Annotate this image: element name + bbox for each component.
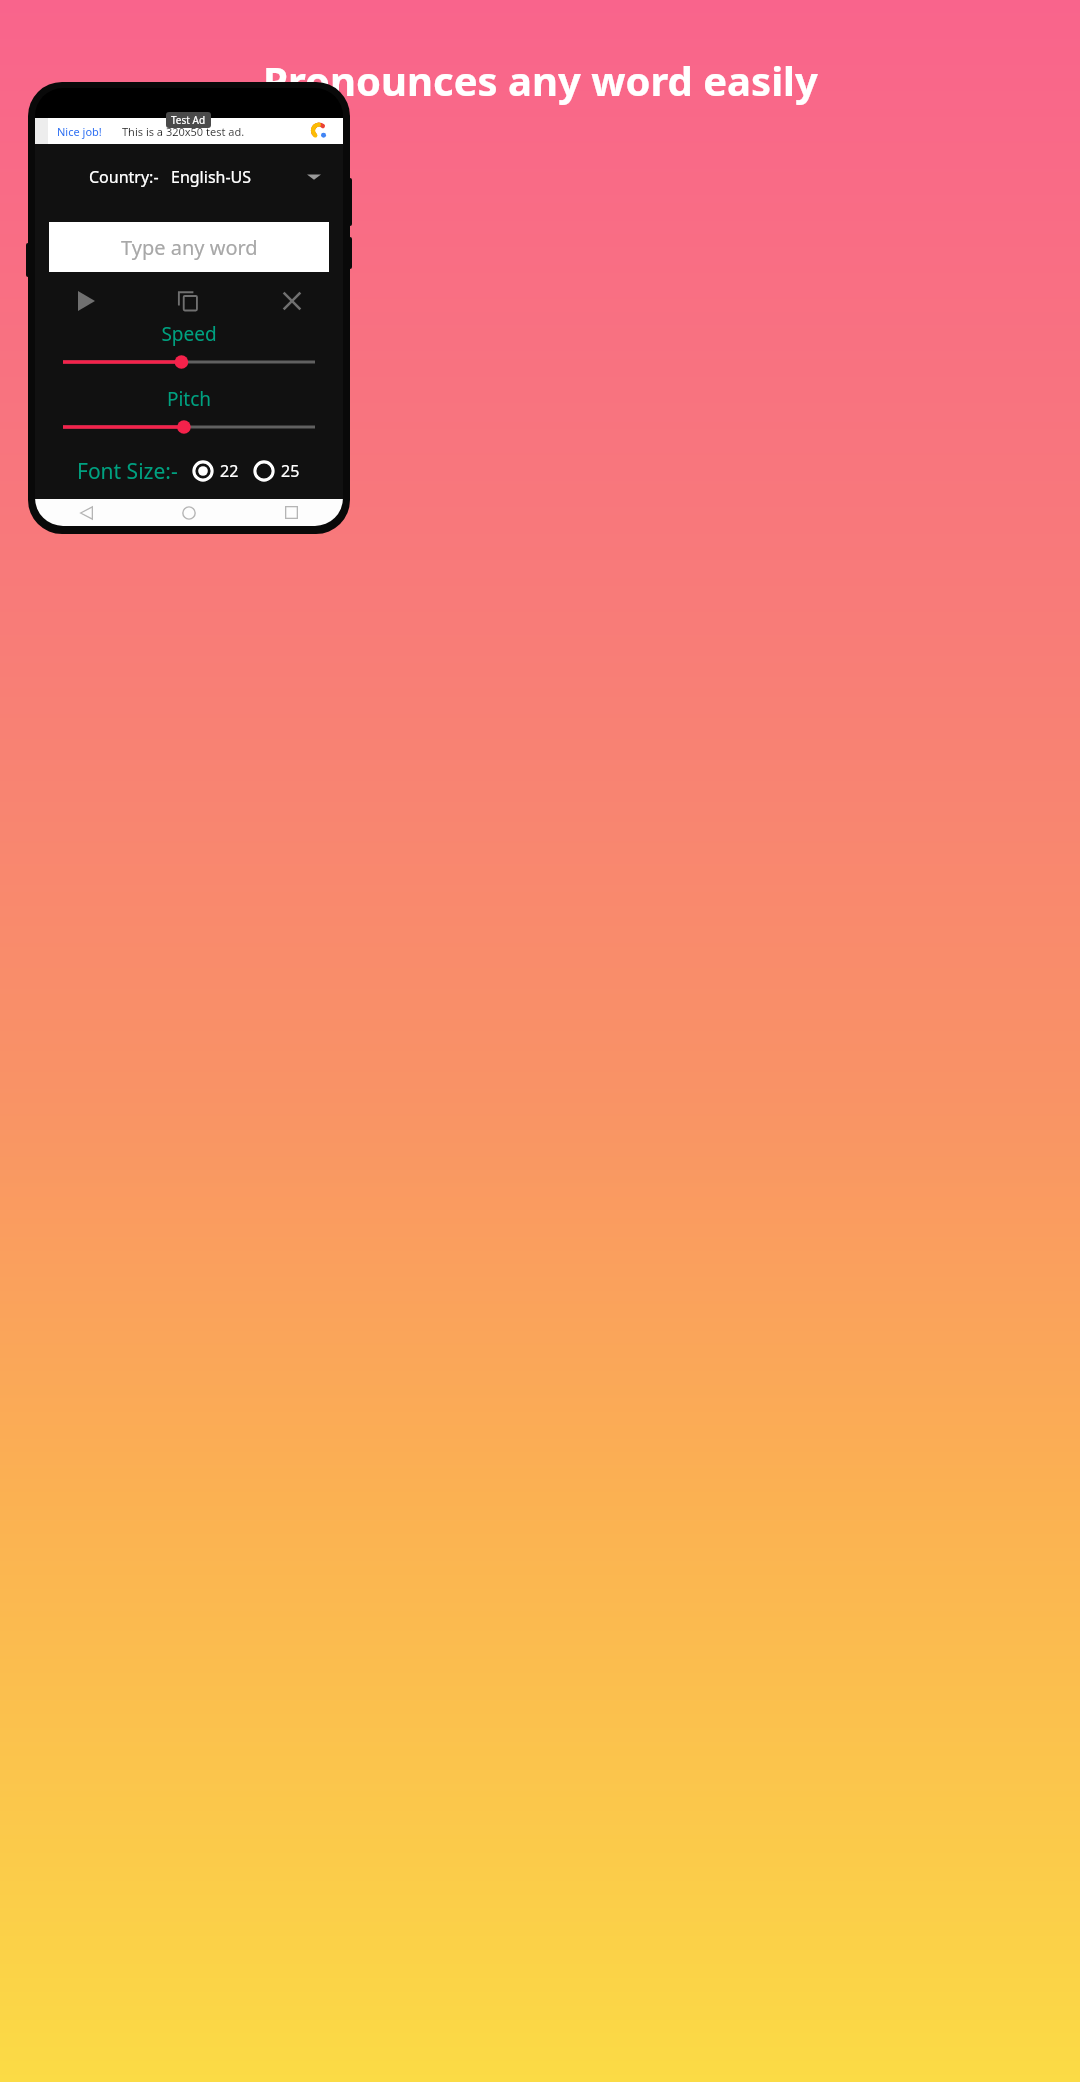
button[interactable]: Nice job! — [35, 118, 343, 144]
button[interactable]: Clear — [240, 281, 343, 321]
button[interactable]: Back — [35, 499, 137, 526]
button[interactable]: Country:- — [35, 160, 343, 194]
staticText: 25 — [281, 460, 300, 482]
staticText: English-US — [171, 166, 252, 188]
button[interactable] — [63, 351, 315, 373]
staticText: 22 — [220, 460, 239, 482]
button[interactable]: Recent apps — [240, 499, 343, 526]
button[interactable]: Speak — [35, 281, 137, 321]
staticText: This is a 320x50 test ad. — [122, 124, 245, 139]
button[interactable]: Copy — [137, 281, 240, 321]
staticText: Pronounces any word easily — [263, 53, 818, 107]
button[interactable]: Home — [137, 499, 240, 526]
staticText: Test Ad — [171, 113, 206, 127]
staticText: Nice job! — [57, 124, 102, 139]
staticText: Speed — [35, 321, 343, 347]
staticText: Pitch — [35, 386, 343, 412]
button[interactable]: 22 — [192, 460, 239, 482]
button[interactable]: 25 — [253, 460, 300, 482]
button[interactable]: Type any word — [49, 222, 329, 272]
staticText: Type any word — [121, 234, 258, 261]
button[interactable] — [63, 416, 315, 438]
staticText: Font Size:- — [77, 457, 178, 486]
staticText: Country:- — [89, 166, 159, 188]
